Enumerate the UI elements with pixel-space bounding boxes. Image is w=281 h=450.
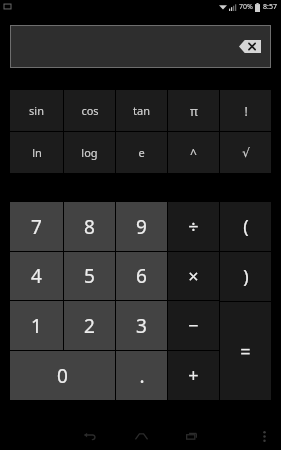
staticText: 8:57 <box>263 2 277 12</box>
button[interactable]: Recent apps <box>181 426 201 446</box>
button[interactable]: 4 <box>10 252 63 300</box>
staticText: 6 <box>136 263 147 289</box>
button[interactable]: 8 <box>64 202 115 251</box>
staticText: = <box>240 339 251 364</box>
staticText: √ <box>242 146 250 160</box>
staticText: − <box>188 313 199 338</box>
button[interactable]: e <box>116 132 167 173</box>
button[interactable]: = <box>220 302 271 400</box>
button[interactable]: ^ <box>168 132 219 173</box>
staticText: ( <box>243 214 249 239</box>
staticText: 8 <box>84 214 95 240</box>
staticText: ln <box>32 145 42 160</box>
button[interactable]: log <box>64 132 115 173</box>
staticText: sin <box>29 103 44 118</box>
button[interactable]: 3 <box>116 301 167 350</box>
button[interactable]: × <box>168 252 219 300</box>
button[interactable]: + <box>168 351 219 400</box>
button[interactable]: 6 <box>116 252 167 300</box>
staticText: ! <box>244 103 248 119</box>
staticText: 1 <box>31 313 42 339</box>
button[interactable]: ( <box>220 202 271 251</box>
button[interactable]: . <box>116 351 167 400</box>
button[interactable]: 1 <box>10 301 63 350</box>
staticText: 0 <box>57 363 68 389</box>
staticText: log <box>81 145 98 160</box>
staticText: 5 <box>84 263 95 289</box>
button[interactable]: − <box>168 301 219 350</box>
staticText: 9 <box>136 214 147 240</box>
button[interactable]: 9 <box>116 202 167 251</box>
staticText: 3 <box>136 313 147 339</box>
staticText: ^ <box>190 145 197 161</box>
button[interactable]: ) <box>220 252 271 301</box>
button[interactable]: tan <box>116 90 167 131</box>
button[interactable]: Backspace <box>239 40 261 53</box>
staticText: tan <box>133 103 150 118</box>
button[interactable]: π <box>168 90 219 131</box>
button[interactable]: Backspace <box>10 25 271 68</box>
button[interactable]: √ <box>220 132 271 173</box>
staticText: ÷ <box>188 214 199 239</box>
button[interactable]: 2 <box>64 301 115 350</box>
staticText: 4 <box>31 263 42 289</box>
button[interactable]: ! <box>220 90 271 131</box>
button[interactable]: More options <box>255 427 273 445</box>
staticText: e <box>138 145 145 160</box>
button[interactable]: cos <box>64 90 115 131</box>
staticText: + <box>188 363 199 388</box>
staticText: . <box>139 363 145 389</box>
button[interactable]: 5 <box>64 252 115 300</box>
button[interactable]: ln <box>10 132 63 173</box>
staticText: ) <box>243 264 249 289</box>
button[interactable]: 7 <box>10 202 63 251</box>
staticText: cos <box>81 103 99 118</box>
button[interactable]: Home <box>131 426 151 446</box>
staticText: 70% <box>239 2 253 12</box>
button[interactable]: sin <box>10 90 63 131</box>
staticText: π <box>190 103 198 119</box>
staticText: × <box>188 264 199 289</box>
staticText: 2 <box>84 313 95 339</box>
button[interactable]: 0 <box>10 351 115 400</box>
button[interactable]: Back <box>80 426 100 446</box>
staticText: 7 <box>31 214 42 240</box>
button[interactable]: ÷ <box>168 202 219 251</box>
